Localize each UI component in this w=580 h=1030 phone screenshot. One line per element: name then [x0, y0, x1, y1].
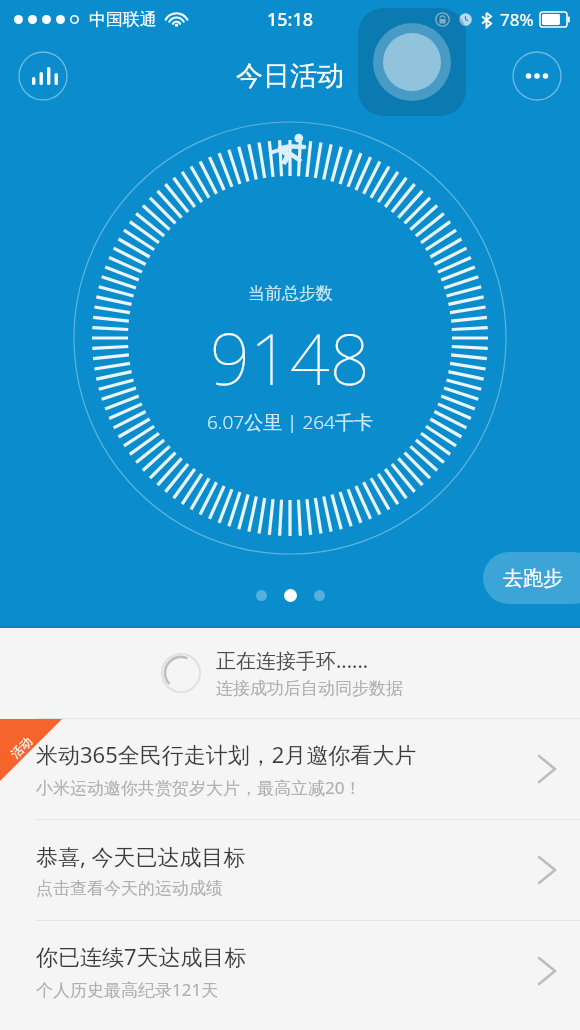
staticText: 15:18 — [267, 7, 314, 32]
button[interactable]: Statistics — [18, 51, 68, 101]
staticText: 今日活动 — [236, 59, 344, 93]
button[interactable]: More options — [512, 51, 562, 101]
button[interactable]: 恭喜, 今天已达成目标 — [0, 820, 580, 920]
staticText: 小米运动邀你共赏贺岁大片，最高立减20！ — [36, 776, 362, 799]
staticText: 正在连接手环...... — [216, 647, 369, 674]
staticText: 9148 — [210, 310, 370, 405]
button[interactable]: AssistiveTouch — [358, 8, 466, 116]
staticText: 活动 — [8, 734, 35, 761]
staticText: 中国联通 — [89, 9, 157, 30]
button[interactable]: 正在连接手环...... — [0, 628, 580, 718]
staticText: 恭喜, 今天已达成目标 — [36, 841, 246, 871]
staticText: 米动365全民行走计划，2月邀你看大片 — [36, 739, 417, 769]
staticText: 连接成功后自动同步数据 — [216, 678, 403, 699]
staticText: 当前总步数 — [248, 283, 333, 304]
staticText: 点击查看今天的运动成绩 — [36, 878, 223, 899]
button[interactable]: 去跑步 — [483, 552, 580, 604]
staticText: 78% — [500, 8, 534, 31]
staticText: 你已连续7天达成目标 — [36, 941, 247, 971]
button[interactable]: 米动365全民行走计划，2月邀你看大片 — [0, 719, 580, 819]
staticText: 6.07公里 | 264千卡 — [207, 409, 373, 435]
staticText: 个人历史最高纪录121天 — [36, 978, 219, 1001]
button[interactable]: 你已连续7天达成目标 — [0, 921, 580, 1021]
staticText: 去跑步 — [503, 566, 563, 591]
